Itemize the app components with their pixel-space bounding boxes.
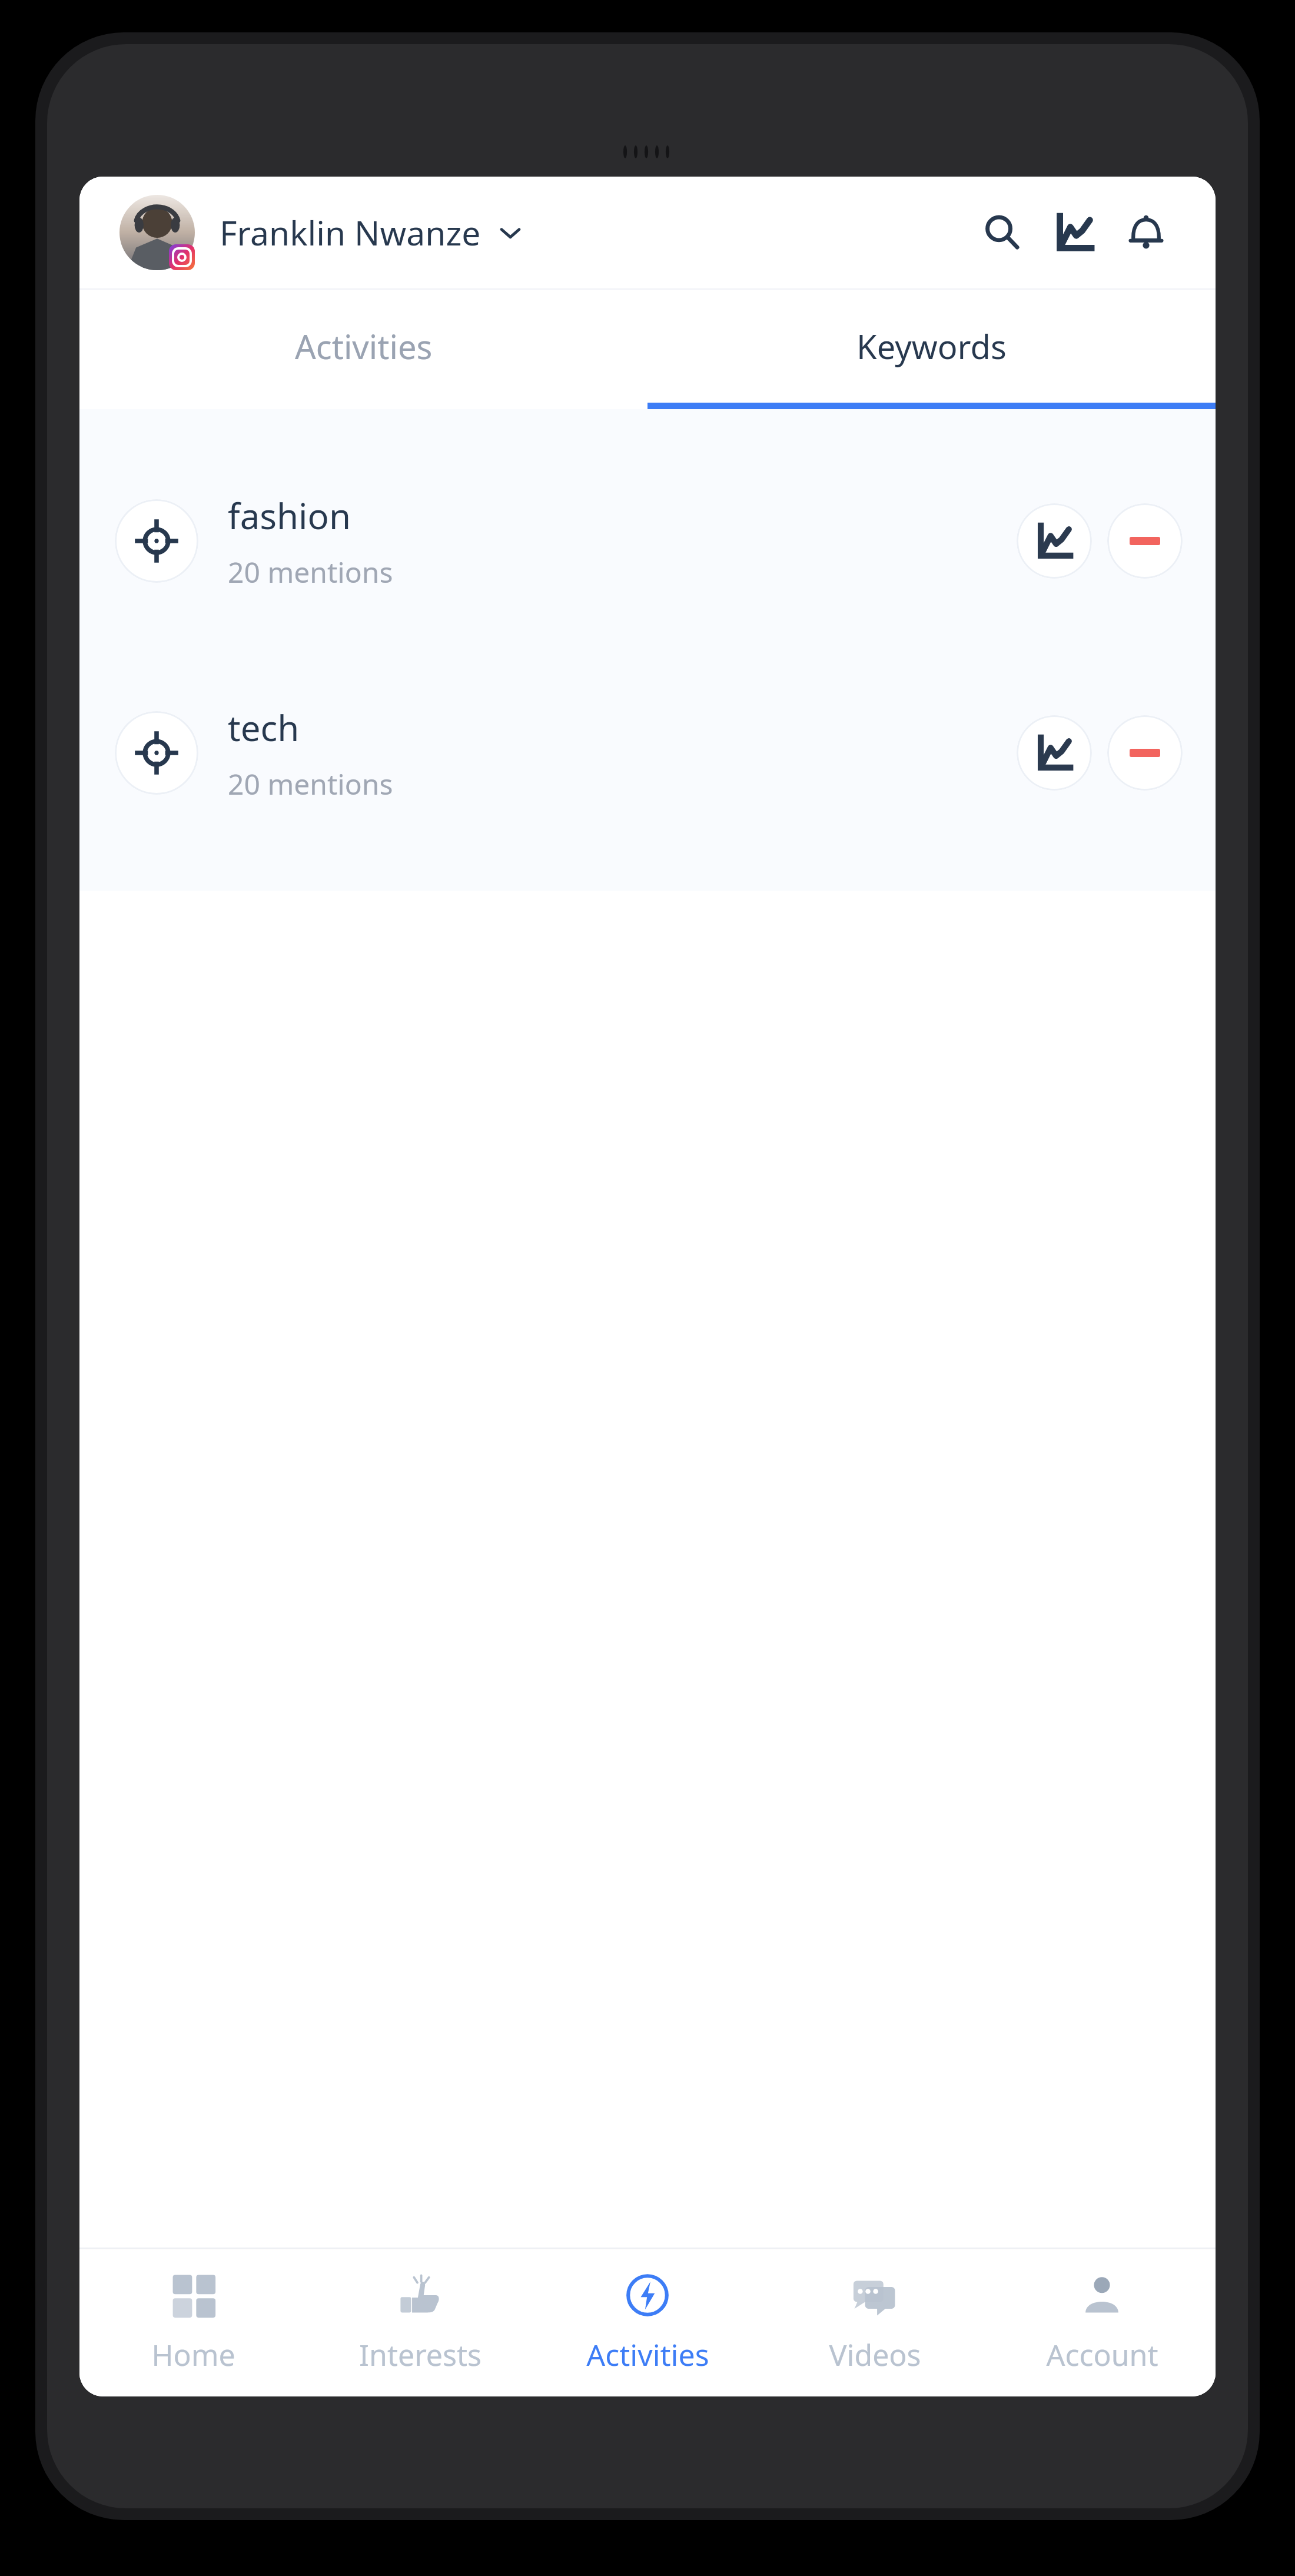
button[interactable]: Remove keyword — [1107, 503, 1183, 579]
staticText: 20 mentions — [228, 765, 393, 803]
button[interactable]: Activities — [534, 2249, 761, 2396]
button[interactable]: Activities — [79, 290, 647, 403]
staticText: 20 mentions — [228, 553, 393, 591]
button[interactable]: View trend — [1017, 715, 1092, 791]
staticText: Account — [1046, 2335, 1158, 2375]
button[interactable]: Account — [988, 2249, 1216, 2396]
button[interactable]: Remove keyword — [1107, 715, 1183, 791]
staticText: Interests — [359, 2335, 482, 2375]
button[interactable]: Home — [79, 2249, 307, 2396]
staticText: Videos — [829, 2335, 921, 2375]
button[interactable]: Search — [969, 200, 1035, 265]
button[interactable]: Notifications — [1113, 200, 1179, 265]
button[interactable]: tech — [79, 647, 1216, 859]
button[interactable]: View trend — [1017, 503, 1092, 579]
staticText: fashion — [228, 492, 351, 540]
button[interactable]: Videos — [761, 2249, 988, 2396]
button[interactable]: Interests — [307, 2249, 534, 2396]
button[interactable]: Franklin Nwanze — [220, 210, 523, 255]
staticText: tech — [228, 703, 300, 752]
button[interactable]: Analytics — [1041, 200, 1107, 265]
staticText: Activities — [586, 2335, 709, 2375]
staticText: Keywords — [856, 324, 1007, 369]
staticText: Home — [151, 2335, 235, 2375]
button[interactable]: Profile — [116, 191, 198, 274]
staticText: Activities — [295, 324, 433, 369]
staticText: Franklin Nwanze — [220, 210, 481, 255]
button[interactable]: Keywords — [647, 290, 1216, 403]
button[interactable]: fashion — [79, 435, 1216, 647]
